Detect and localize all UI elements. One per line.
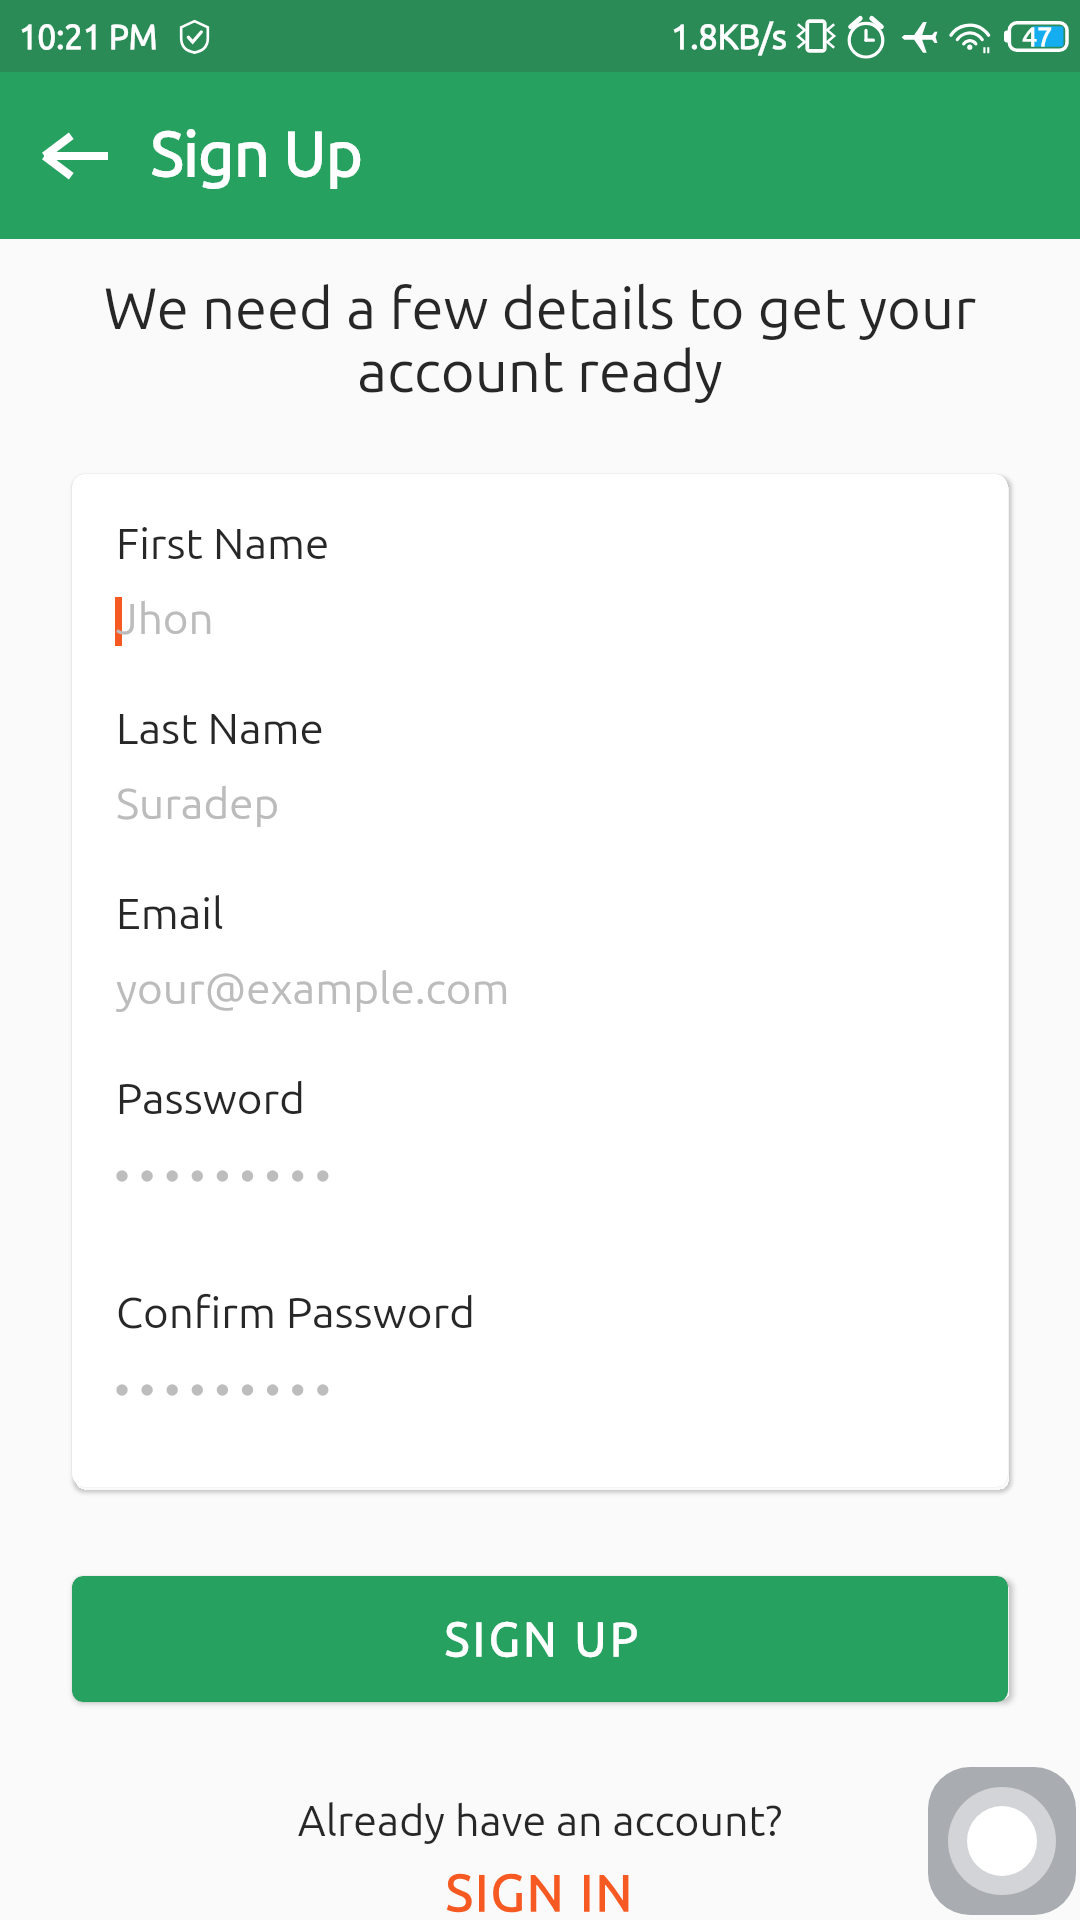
button[interactable]: Password	[72, 1051, 1008, 1274]
staticText: Password	[116, 1073, 305, 1122]
staticText: 1.8KB/s	[671, 17, 787, 55]
staticText: Suradep	[116, 778, 280, 827]
staticText: First Name	[116, 518, 330, 567]
staticText: SIGN UP	[445, 1613, 642, 1665]
button[interactable]: First Name	[72, 496, 1008, 681]
staticText: 10:21 PM	[19, 18, 158, 55]
staticText: Email	[116, 888, 224, 937]
button[interactable]: Screen recorder	[928, 1767, 1076, 1915]
staticText: Already have an account?	[0, 1796, 1080, 1844]
button[interactable]: SIGN UP	[72, 1576, 1008, 1702]
staticText: 47	[1022, 21, 1053, 51]
staticText: We need a few details to get your accoun…	[40, 275, 1040, 403]
staticText: Sign Up	[151, 118, 363, 188]
staticText: Jhon	[116, 593, 214, 642]
button[interactable]: Confirm Password	[72, 1265, 1008, 1487]
staticText: SIGN IN	[446, 1863, 635, 1920]
staticText: Last Name	[116, 703, 324, 752]
button[interactable]: SIGN IN	[430, 1863, 650, 1920]
staticText: Confirm Password	[116, 1287, 475, 1336]
button[interactable]: Email	[72, 866, 1008, 1051]
button[interactable]: Last Name	[72, 681, 1008, 866]
button[interactable]: Back	[26, 108, 122, 204]
staticText: your@example.com	[116, 963, 510, 1012]
